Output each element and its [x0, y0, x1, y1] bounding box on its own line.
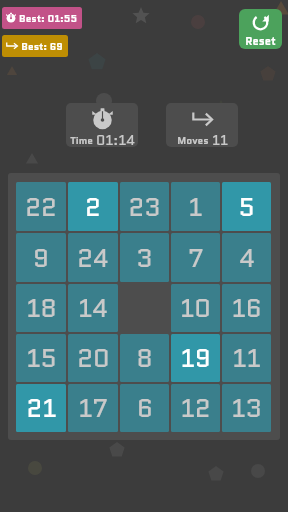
staticText: 2	[85, 189, 101, 225]
button[interactable]: Time	[66, 103, 138, 147]
staticText: 11	[232, 340, 261, 376]
staticText: Time	[70, 133, 93, 147]
button[interactable]: 4	[222, 233, 271, 282]
staticText: 21	[26, 390, 57, 426]
staticText: 19	[180, 340, 211, 376]
button[interactable]: Best: 01:55	[2, 7, 82, 29]
button[interactable]: 13	[222, 384, 271, 432]
button[interactable]: 23	[120, 182, 169, 231]
button[interactable]: Best: 69	[2, 35, 68, 57]
button[interactable]: Reset	[239, 9, 282, 49]
button[interactable]: Moves	[166, 103, 238, 147]
staticText: 10	[180, 290, 211, 326]
button[interactable]: 3	[120, 233, 169, 282]
button[interactable]: 7	[171, 233, 220, 282]
staticText: 15	[26, 340, 57, 376]
staticText: Best: 01:55	[19, 11, 77, 25]
button[interactable]: 2	[68, 182, 118, 231]
staticText: 7	[188, 240, 204, 276]
staticText: 1	[188, 189, 203, 225]
button[interactable]: 14	[68, 284, 118, 332]
button[interactable]: 15	[16, 334, 66, 382]
staticText: 3	[136, 240, 153, 276]
button[interactable]: 18	[16, 284, 66, 332]
staticText: 24	[77, 240, 109, 276]
staticText: 13	[231, 390, 262, 426]
staticText: 20	[77, 340, 110, 376]
staticText: 16	[231, 290, 262, 326]
staticText: 12	[180, 390, 211, 426]
button[interactable]: 6	[120, 384, 169, 432]
button[interactable]: 22	[16, 182, 66, 231]
button[interactable]: 24	[68, 233, 118, 282]
staticText: 22	[25, 189, 57, 225]
staticText: 17	[78, 390, 108, 426]
button[interactable]: 17	[68, 384, 118, 432]
button[interactable]: 21	[16, 384, 66, 432]
staticText: 11	[212, 130, 228, 147]
staticText: 8	[136, 340, 153, 376]
staticText: Best: 69	[21, 39, 63, 53]
staticText: Reset	[245, 33, 276, 49]
staticText: 18	[26, 290, 57, 326]
button[interactable]: 1	[171, 182, 220, 231]
button[interactable]: 19	[171, 334, 220, 382]
button[interactable]: 20	[68, 334, 118, 382]
staticText: 6	[137, 390, 153, 426]
staticText: 14	[78, 290, 108, 326]
button[interactable]: 11	[222, 334, 271, 382]
button[interactable]: 16	[222, 284, 271, 332]
staticText: 23	[128, 189, 161, 225]
button[interactable]: 10	[171, 284, 220, 332]
staticText: Moves	[177, 133, 209, 147]
staticText: 01:14	[96, 130, 135, 147]
staticText: 5	[238, 189, 255, 225]
button[interactable]: 5	[222, 182, 271, 231]
staticText: 4	[239, 240, 255, 276]
button[interactable]: 8	[120, 334, 169, 382]
button[interactable]: 12	[171, 384, 220, 432]
staticText: 9	[33, 240, 49, 276]
button[interactable]: 9	[16, 233, 66, 282]
